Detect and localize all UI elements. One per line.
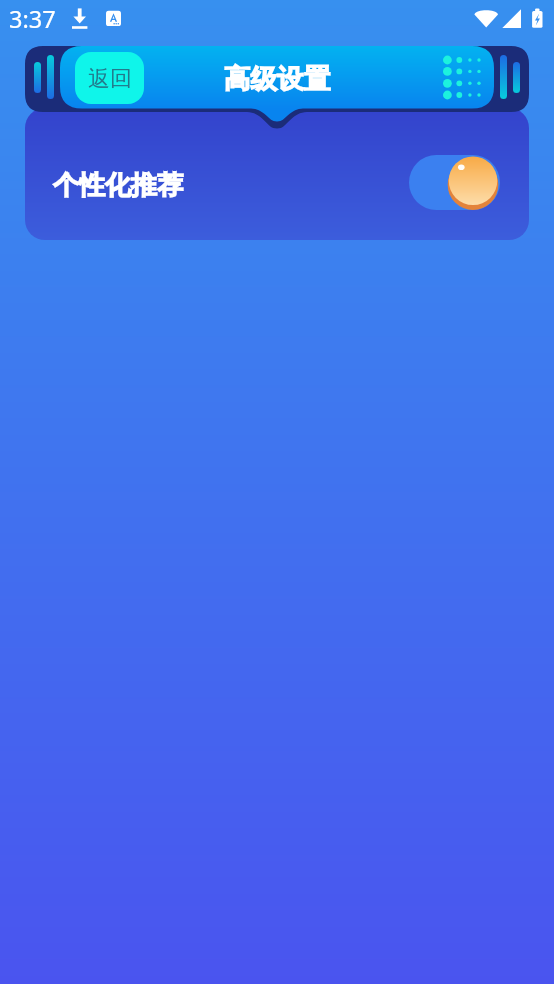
button[interactable]: 返回: [75, 52, 144, 104]
staticText: 高级设置: [224, 62, 330, 95]
staticText: 个性化推荐: [53, 169, 183, 202]
staticText: 3:37: [9, 3, 56, 35]
staticText: 返回: [88, 65, 132, 93]
button[interactable]: 个性化推荐: [25, 108, 529, 240]
button[interactable]: Toggle personalized recommendations: [409, 155, 500, 210]
